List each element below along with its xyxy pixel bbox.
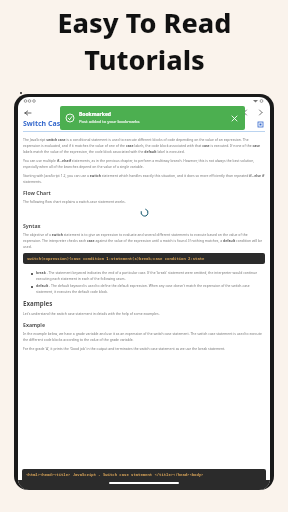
staticText: In the example below, we have a grade va… bbox=[23, 331, 265, 342]
button[interactable]: Bookmarked bbox=[60, 106, 245, 130]
button[interactable]: Back bbox=[22, 107, 33, 118]
staticText: Flow Chart bbox=[23, 189, 51, 196]
staticText: Syntax bbox=[23, 222, 41, 229]
staticText: Bookmarked bbox=[79, 111, 112, 118]
staticText: Let's understand the switch case stateme… bbox=[23, 311, 160, 316]
staticText: Tutorials bbox=[84, 41, 205, 78]
button[interactable]: Next bbox=[255, 107, 266, 118]
staticText: The objective of a switch statement is t… bbox=[23, 232, 265, 249]
staticText: Starting with JavaScript 1.2, you can us… bbox=[23, 173, 265, 184]
staticText: Switch Case bbox=[23, 119, 65, 129]
button[interactable]: Dismiss bbox=[229, 113, 239, 123]
staticText: <html><head><title> JavaScript - Switch … bbox=[26, 472, 204, 477]
button[interactable]: Previous bbox=[240, 107, 251, 118]
staticText: switch(expression){case condition 1:stat… bbox=[27, 256, 205, 261]
staticText: Examples bbox=[23, 299, 53, 307]
staticText: Post added to your bookmarks bbox=[79, 119, 140, 125]
staticText: You can use multiple if...elseif stateme… bbox=[23, 158, 265, 169]
button[interactable]: Bookmark bbox=[256, 120, 265, 129]
staticText: Example bbox=[23, 321, 45, 328]
staticText: For the grade 'A', it prints the 'Good j… bbox=[23, 346, 226, 351]
staticText: Easy To Read bbox=[57, 4, 232, 41]
staticText: default - The default keyword is used to… bbox=[36, 283, 265, 294]
staticText: The following flow chart explains a swit… bbox=[23, 199, 126, 204]
staticText: break - The statement keyword indicates … bbox=[36, 270, 265, 281]
staticText: The JavaScript switch case is a conditio… bbox=[23, 137, 265, 154]
